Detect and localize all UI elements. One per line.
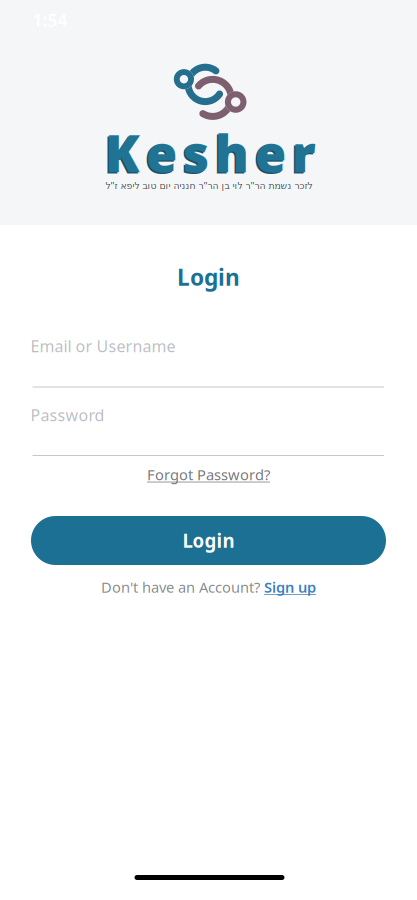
staticText: לזכר נשמת הר"ר לוי בן הר"ר חנניה יום טוב… (105, 179, 312, 192)
button[interactable]: Forgot Password? (147, 465, 270, 484)
staticText: Login (182, 528, 234, 553)
staticText: Password (30, 404, 104, 426)
button[interactable]: Sign up (264, 577, 316, 597)
staticText: Don't have an Account? (101, 577, 260, 597)
button[interactable]: Login (31, 516, 386, 565)
staticText: Sign up (264, 577, 316, 597)
staticText: 1:54 (32, 8, 67, 31)
staticText: Kesher (105, 119, 316, 186)
staticText: Kesher (104, 120, 315, 188)
staticText: Login (177, 262, 240, 292)
staticText: Forgot Password? (147, 465, 270, 484)
staticText: Email or Username (30, 335, 175, 357)
